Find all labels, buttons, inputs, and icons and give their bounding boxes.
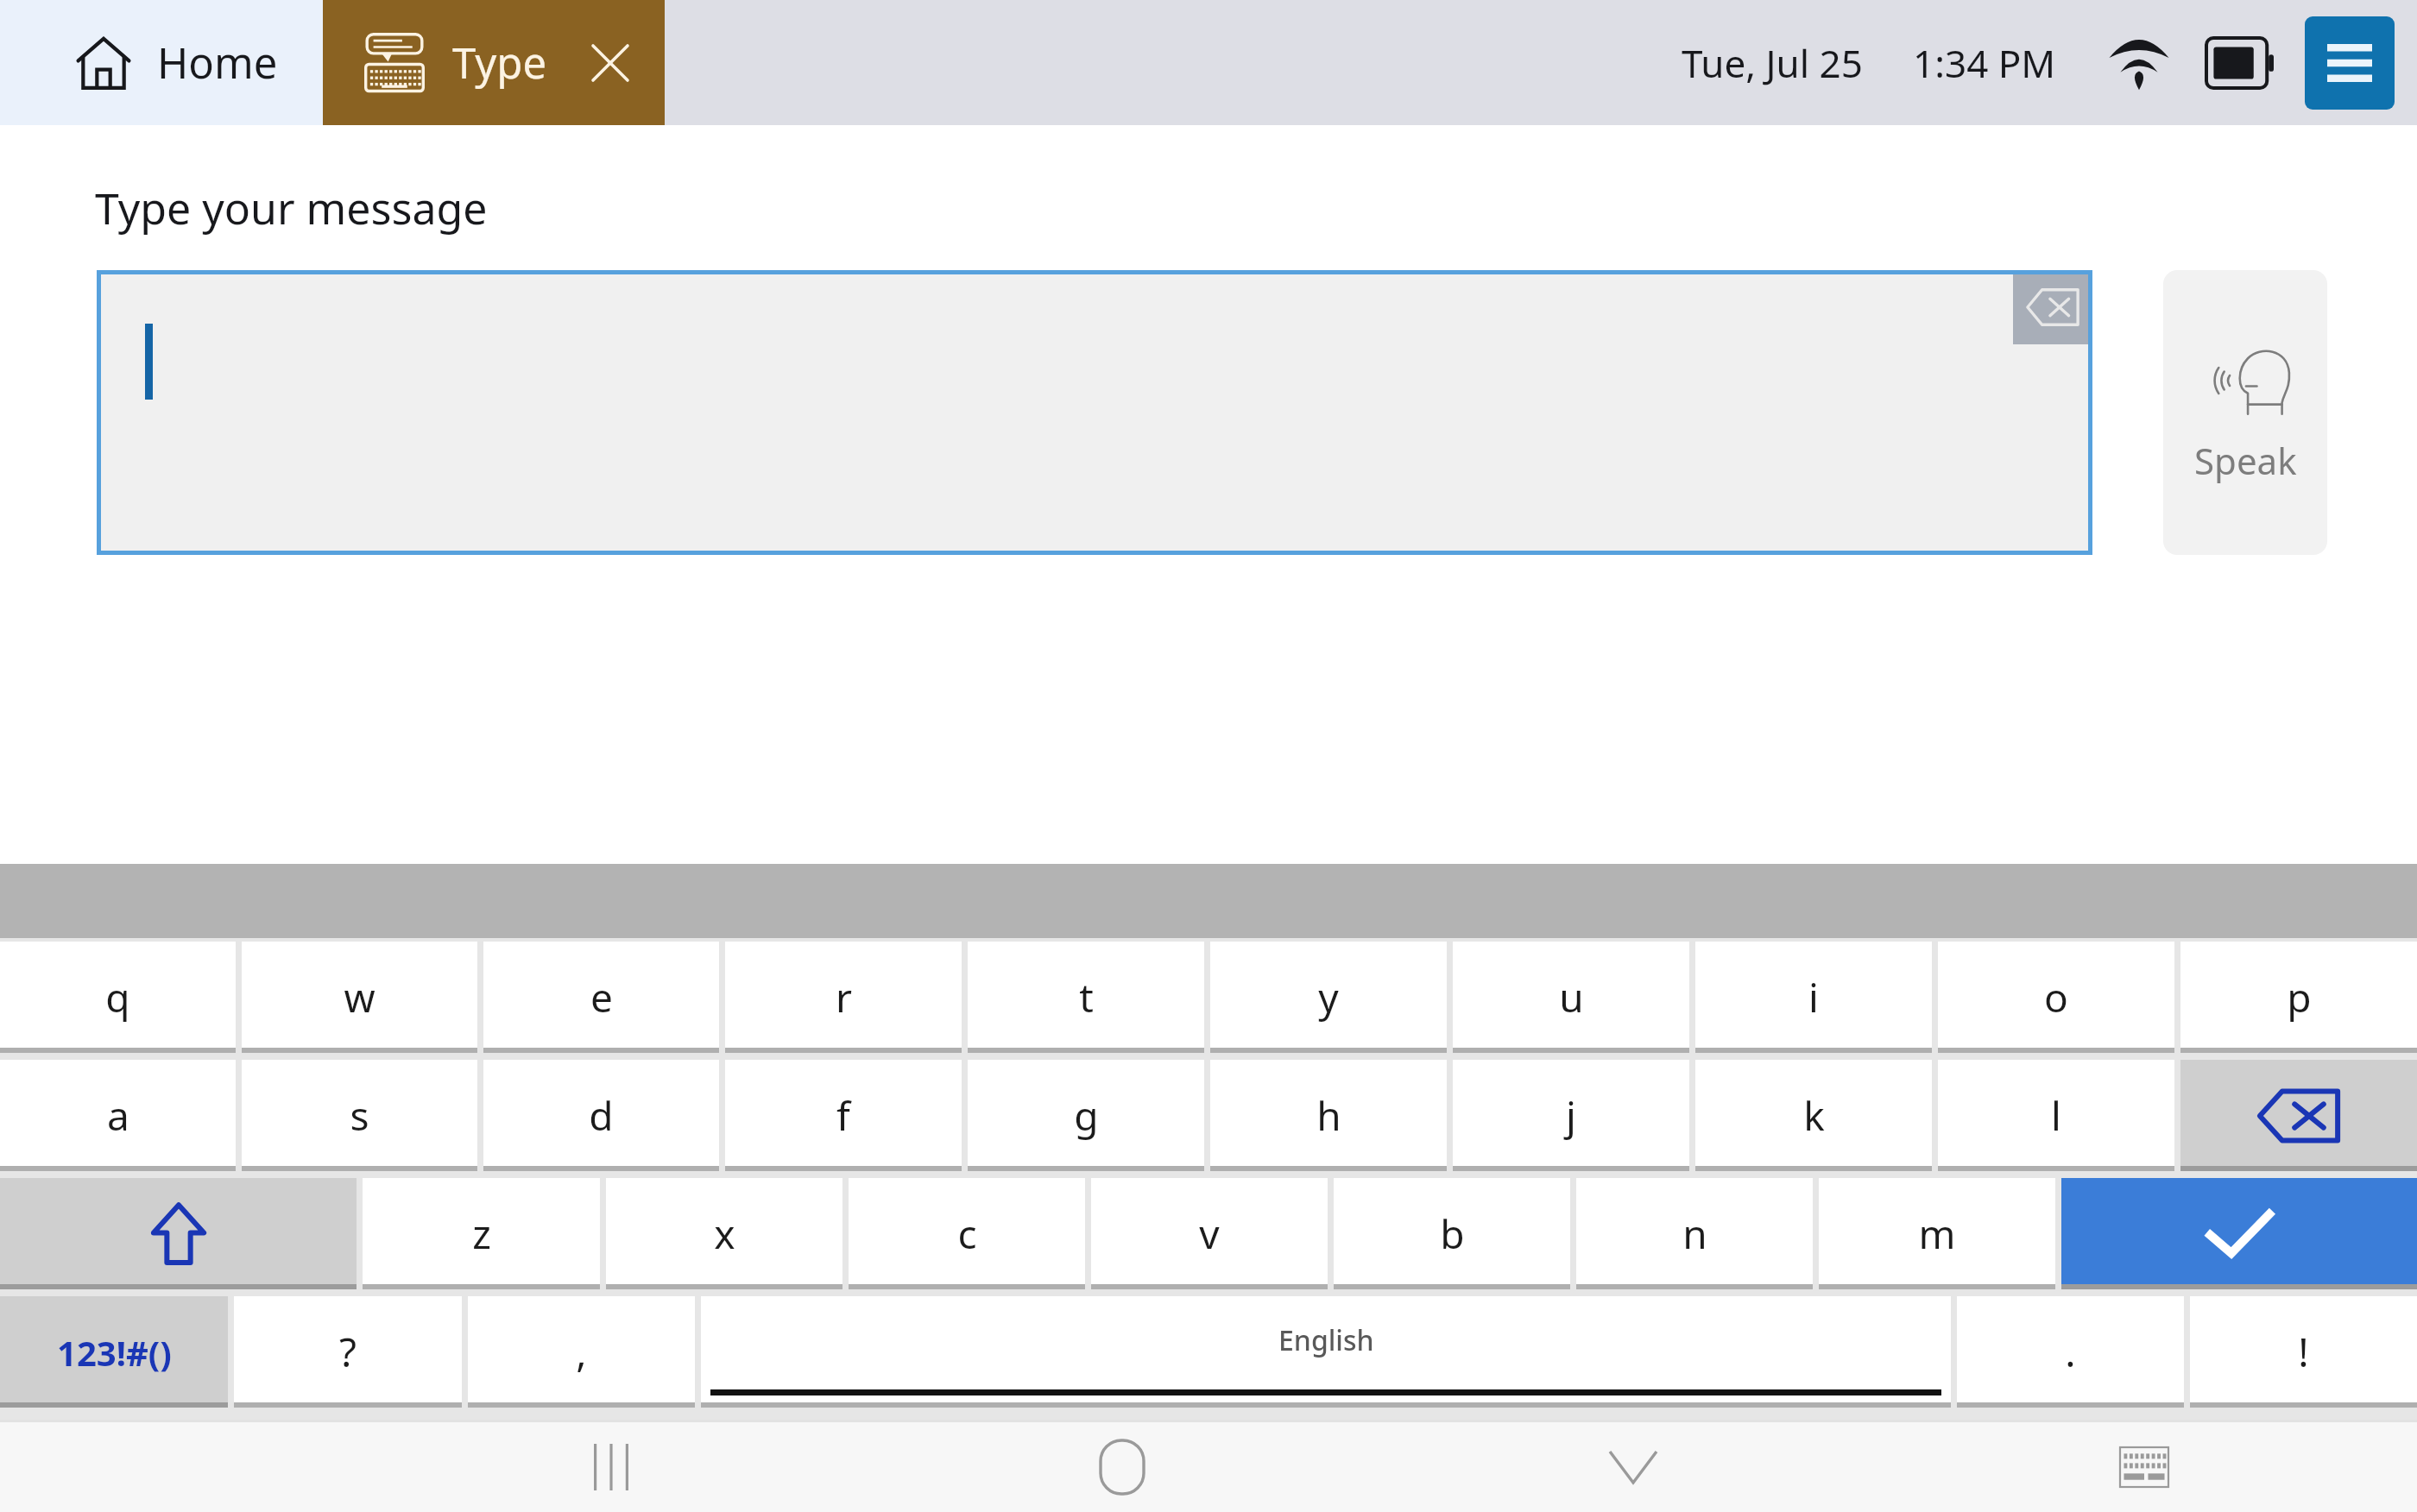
- button[interactable]: Type: [323, 0, 665, 125]
- button[interactable]: r: [725, 942, 962, 1053]
- button[interactable]: x: [606, 1178, 842, 1289]
- button[interactable]: !: [2190, 1296, 2417, 1408]
- staticText: Type: [452, 34, 547, 91]
- button[interactable]: Enter: [2061, 1178, 2417, 1289]
- staticText: 123!#(): [57, 1329, 172, 1376]
- button[interactable]: k: [1695, 1060, 1932, 1171]
- button[interactable]: Clear text: [2013, 270, 2092, 344]
- staticText: l: [2051, 1088, 2061, 1143]
- button[interactable]: o: [1938, 942, 2174, 1053]
- button[interactable]: Recents: [525, 1422, 697, 1512]
- staticText: ?: [339, 1325, 357, 1379]
- button[interactable]: Menu: [2305, 16, 2395, 110]
- button[interactable]: y: [1210, 942, 1447, 1053]
- button[interactable]: j: [1453, 1060, 1689, 1171]
- button[interactable]: Hide keyboard: [1547, 1422, 1720, 1512]
- button[interactable]: Clear text: [97, 270, 2092, 555]
- staticText: j: [1566, 1088, 1576, 1143]
- staticText: y: [1318, 970, 1339, 1024]
- staticText: m: [1918, 1206, 1956, 1261]
- staticText: q: [105, 970, 130, 1024]
- button[interactable]: m: [1819, 1178, 2055, 1289]
- button[interactable]: i: [1695, 942, 1932, 1053]
- staticText: w: [344, 970, 375, 1024]
- staticText: f: [836, 1088, 850, 1143]
- staticText: d: [589, 1088, 614, 1143]
- button[interactable]: Shift: [0, 1178, 357, 1289]
- staticText: i: [1808, 970, 1819, 1024]
- button[interactable]: b: [1334, 1178, 1570, 1289]
- button[interactable]: Space: [701, 1296, 1951, 1408]
- staticText: p: [2287, 970, 2312, 1024]
- button[interactable]: c: [849, 1178, 1085, 1289]
- staticText: a: [107, 1088, 129, 1143]
- staticText: h: [1316, 1088, 1341, 1143]
- button[interactable]: Home: [0, 0, 323, 125]
- button[interactable]: f: [725, 1060, 962, 1171]
- button[interactable]: 123!#(): [0, 1296, 228, 1408]
- staticText: k: [1803, 1088, 1825, 1143]
- button[interactable]: a: [0, 1060, 236, 1171]
- staticText: u: [1559, 970, 1584, 1024]
- staticText: Tue, Jul 25: [1682, 37, 1863, 89]
- button[interactable]: e: [483, 942, 719, 1053]
- staticText: !: [2298, 1325, 2309, 1379]
- staticText: English: [1278, 1321, 1374, 1359]
- button[interactable]: Home: [1036, 1422, 1208, 1512]
- staticText: t: [1079, 970, 1094, 1024]
- other: Wi-Fi: [2108, 37, 2170, 89]
- staticText: x: [714, 1206, 735, 1261]
- staticText: Type your message: [95, 179, 488, 237]
- staticText: c: [957, 1206, 977, 1261]
- button[interactable]: ,: [468, 1296, 695, 1408]
- staticText: e: [590, 970, 613, 1024]
- button[interactable]: p: [2180, 942, 2417, 1053]
- staticText: 1:34 PM: [1913, 37, 2056, 89]
- button[interactable]: Backspace: [2180, 1060, 2417, 1171]
- staticText: z: [472, 1206, 491, 1261]
- button[interactable]: u: [1453, 942, 1689, 1053]
- staticText: Home: [157, 34, 278, 91]
- button[interactable]: Switch keyboard: [2058, 1422, 2231, 1512]
- button[interactable]: q: [0, 942, 236, 1053]
- staticText: Speak: [2194, 436, 2297, 485]
- staticText: ,: [576, 1325, 587, 1379]
- staticText: o: [2044, 970, 2068, 1024]
- staticText: n: [1682, 1206, 1707, 1261]
- button[interactable]: d: [483, 1060, 719, 1171]
- staticText: .: [2065, 1325, 2076, 1379]
- button[interactable]: n: [1576, 1178, 1813, 1289]
- staticText: g: [1074, 1088, 1099, 1143]
- button[interactable]: ?: [234, 1296, 462, 1408]
- button[interactable]: l: [1938, 1060, 2174, 1171]
- button[interactable]: w: [242, 942, 477, 1053]
- staticText: r: [836, 970, 852, 1024]
- button[interactable]: Speak: [2163, 270, 2327, 555]
- staticText: s: [350, 1088, 369, 1143]
- button[interactable]: g: [968, 1060, 1204, 1171]
- other: Battery: [2206, 38, 2274, 88]
- staticText: v: [1199, 1206, 1220, 1261]
- button[interactable]: t: [968, 942, 1204, 1053]
- button[interactable]: v: [1091, 1178, 1328, 1289]
- button[interactable]: Close Type tab: [585, 38, 635, 88]
- button[interactable]: s: [242, 1060, 477, 1171]
- button[interactable]: .: [1957, 1296, 2184, 1408]
- button[interactable]: z: [363, 1178, 600, 1289]
- staticText: b: [1440, 1206, 1465, 1261]
- button[interactable]: h: [1210, 1060, 1447, 1171]
